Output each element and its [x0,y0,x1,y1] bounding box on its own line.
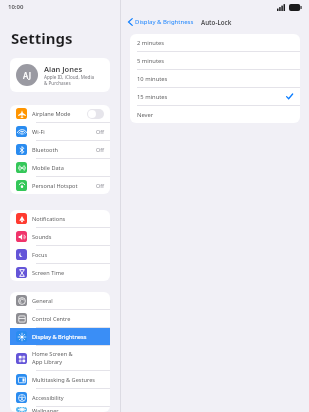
staticText: Settings [11,28,73,48]
button[interactable]: Display & Brightness [10,328,110,345]
staticText: Auto-Lock [201,18,232,26]
button[interactable]: Focus [10,246,110,263]
staticText: Off [96,128,104,135]
staticText: Home Screen & App Library [32,350,104,366]
staticText: Accessibility [32,394,104,402]
button[interactable]: Display & Brightness [126,17,196,27]
button[interactable]: Never [130,106,300,123]
staticText: 5 minutes [137,57,293,65]
staticText: 10:00 [8,3,24,11]
staticText: Focus [32,251,104,259]
staticText: Multitasking & Gestures [32,376,104,384]
staticText: Never [137,111,293,119]
button[interactable]: Notifications [10,210,110,227]
button[interactable]: 5 minutes [130,52,300,69]
button[interactable]: Wallpaper [10,407,110,412]
button[interactable]: Airplane Mode toggle [87,109,104,119]
staticText: Control Centre [32,315,104,323]
staticText: Bluetooth [32,146,96,154]
staticText: Alan Jones [44,64,83,74]
button[interactable]: Airplane Mode [10,105,110,122]
button[interactable]: Home Screen & App Library [10,346,110,370]
staticText: Off [96,146,104,153]
staticText: Off [96,182,104,189]
button[interactable]: 2 minutes [130,34,300,51]
button[interactable]: General [10,292,110,309]
staticText: Apple ID, iCloud, Media & Purchases [44,74,95,86]
staticText: Personal Hotspot [32,182,96,190]
staticText: General [32,297,104,305]
staticText: Display & Brightness [135,18,194,26]
button[interactable]: Personal Hotspot [10,177,110,194]
button[interactable]: Bluetooth [10,141,110,158]
button[interactable]: Multitasking & Gestures [10,371,110,388]
button[interactable]: Control Centre [10,310,110,327]
staticText: Display & Brightness [32,333,104,341]
button[interactable]: Screen Time [10,264,110,281]
staticText: Wallpaper [32,407,104,412]
staticText: Wi-Fi [32,128,96,136]
staticText: 2 minutes [137,39,293,47]
staticText: Notifications [32,215,104,223]
staticText: Mobile Data [32,164,104,172]
button[interactable]: 10 minutes [130,70,300,87]
staticText: AJ [23,70,31,81]
button[interactable]: Accessibility [10,389,110,406]
button[interactable]: Sounds [10,228,110,245]
staticText: Airplane Mode [32,110,87,118]
button[interactable]: 15 minutes [130,88,300,105]
staticText: 10 minutes [137,75,293,83]
staticText: 15 minutes [137,93,286,101]
button[interactable]: Wi-Fi [10,123,110,140]
staticText: Sounds [32,233,104,241]
button[interactable]: AJ [10,58,110,92]
staticText: Screen Time [32,269,104,277]
button[interactable]: Mobile Data [10,159,110,176]
